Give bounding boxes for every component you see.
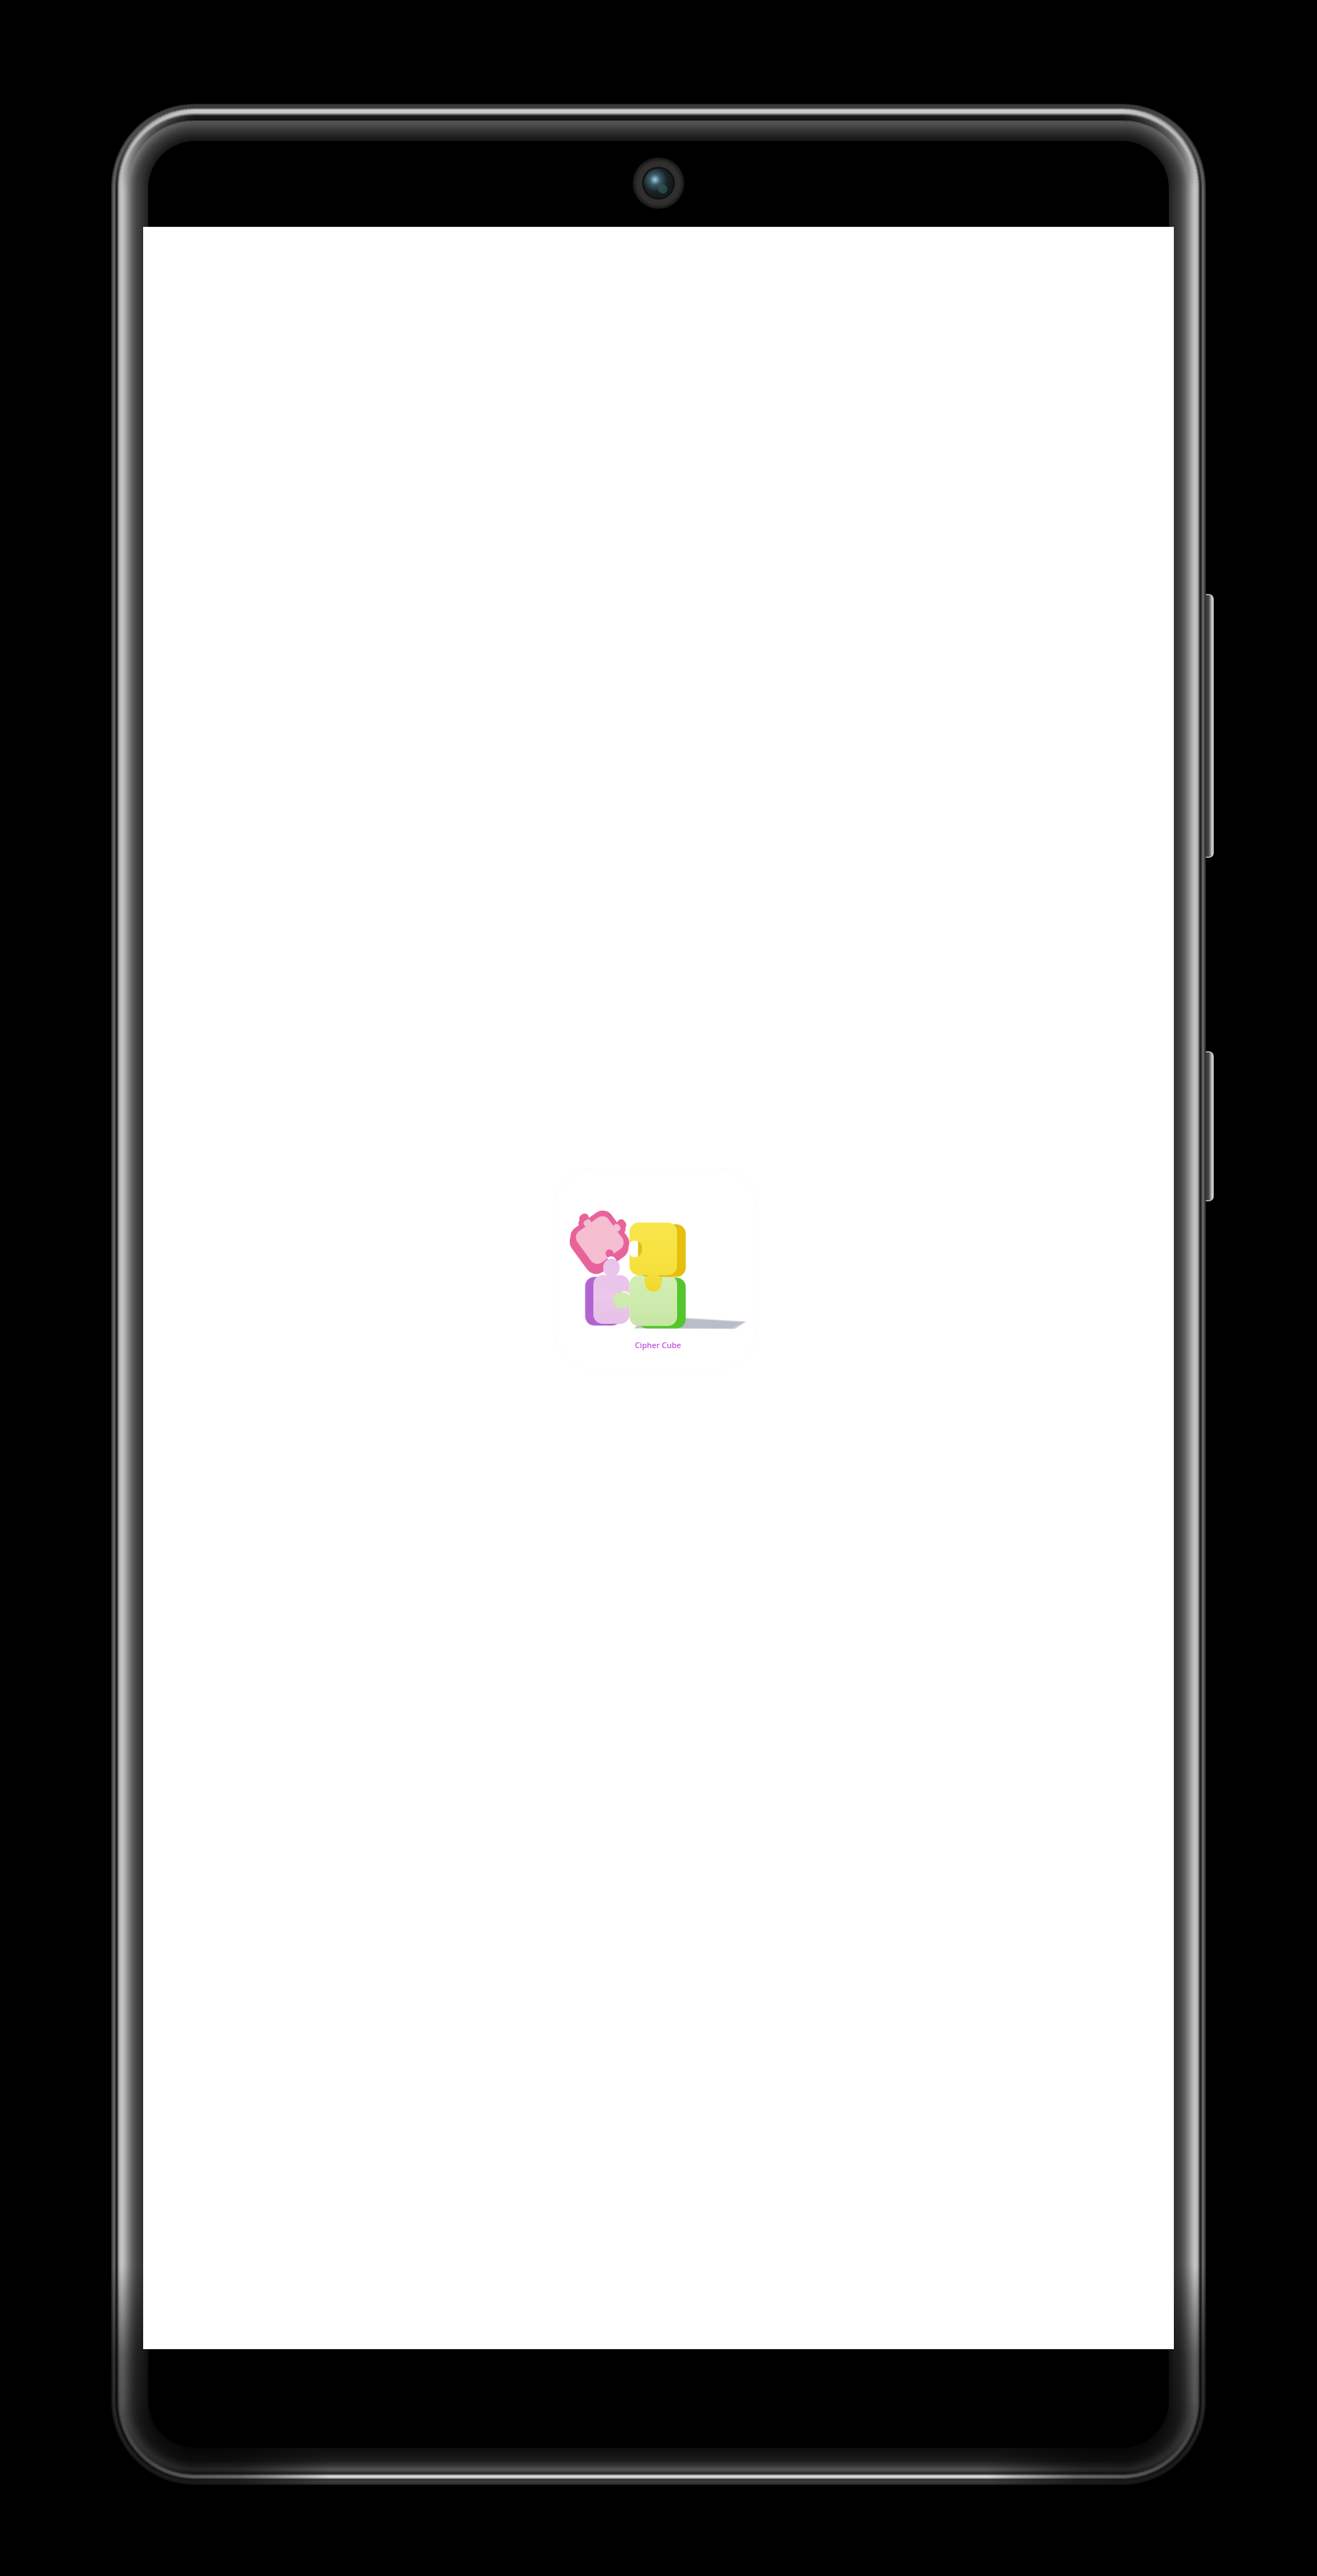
button[interactable]: Cipher Cube splash screen <box>0 0 1317 2576</box>
